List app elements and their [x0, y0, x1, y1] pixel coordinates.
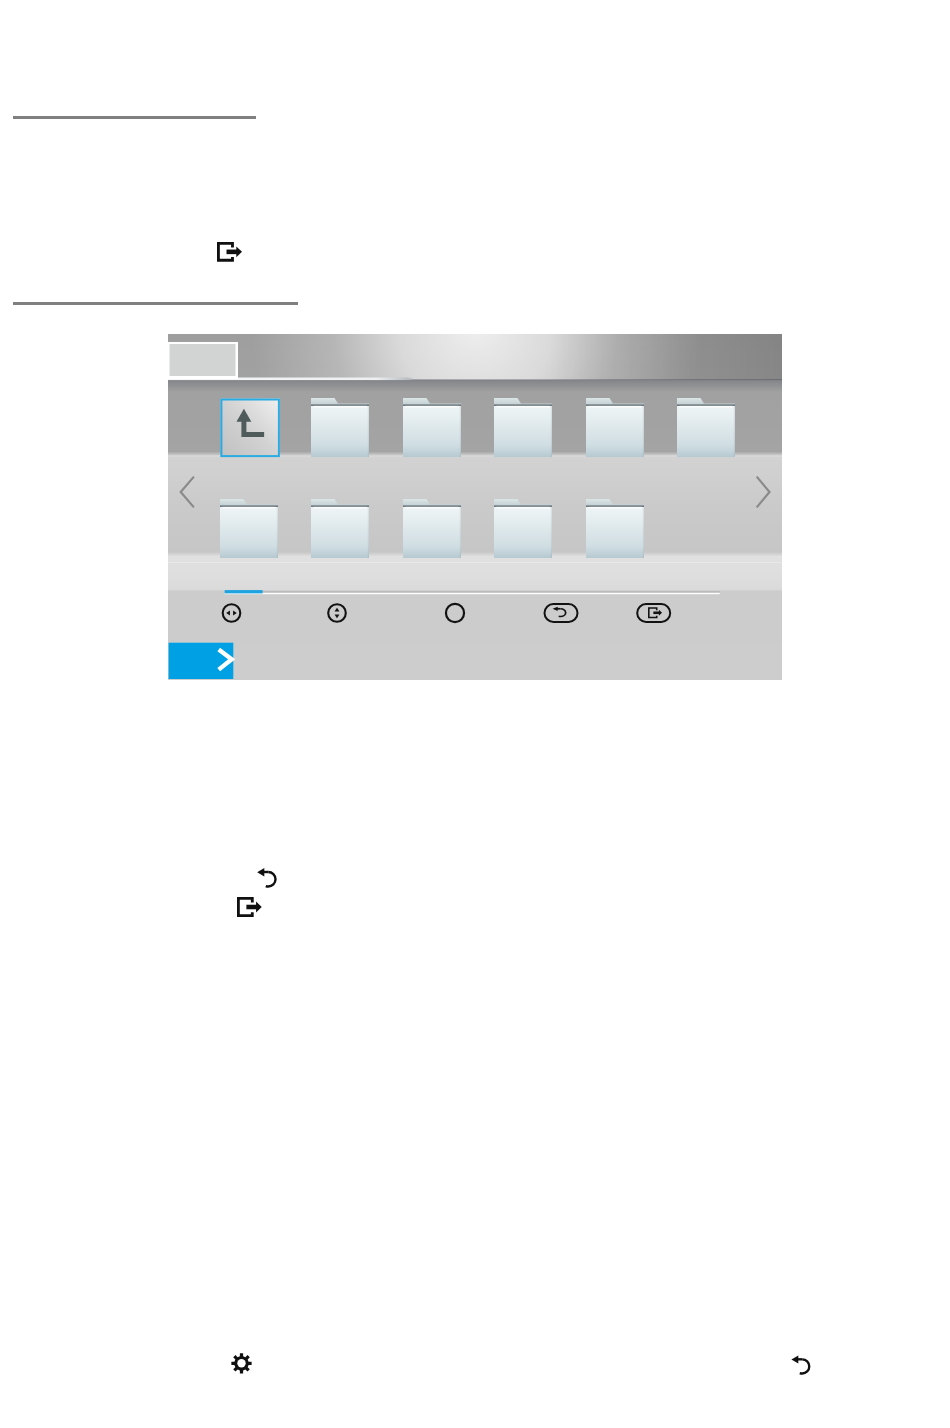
- button[interactable]: Back: [788, 1352, 814, 1378]
- button[interactable]: Exit: [234, 894, 264, 920]
- button[interactable]: Exit: [214, 239, 244, 265]
- button[interactable]: Back: [254, 865, 280, 891]
- button[interactable]: Settings: [228, 1350, 256, 1378]
